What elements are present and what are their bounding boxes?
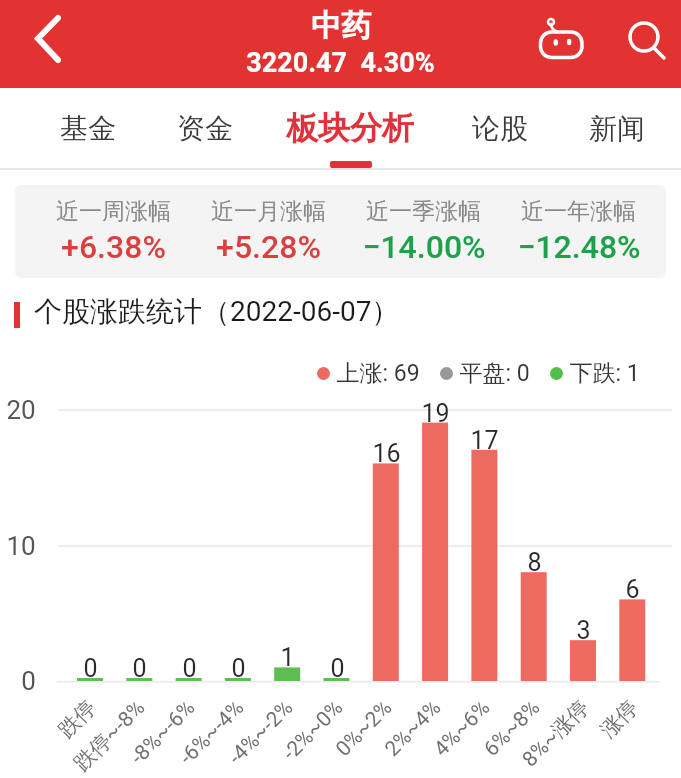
staticText: -2%~0% (277, 695, 348, 766)
button[interactable]: 板块分析 (270, 88, 430, 168)
button[interactable]: 新闻 (537, 88, 681, 168)
staticText: 0 (330, 654, 345, 683)
staticText: 0 (83, 654, 98, 683)
staticText: 资金 (177, 111, 233, 146)
staticText: 3 (576, 616, 591, 645)
staticText: 8 (527, 548, 542, 577)
button[interactable] (532, 14, 592, 70)
staticText: 20 (6, 395, 36, 425)
staticText: 16 (372, 439, 401, 468)
staticText: 上涨: 69 (336, 359, 420, 388)
staticText: 近一季涨幅 (366, 197, 481, 226)
staticText: 4%~6% (429, 695, 495, 762)
button[interactable] (20, 8, 76, 72)
staticText: 平盘: 0 (459, 359, 530, 388)
staticText: 新闻 (589, 111, 645, 146)
staticText: +6.38% (61, 228, 166, 266)
staticText: 8%~涨停 (516, 695, 594, 773)
staticText: 0 (231, 654, 246, 683)
staticText: 0 (182, 654, 197, 683)
staticText: 0 (21, 666, 36, 696)
staticText: 近一月涨幅 (211, 197, 326, 226)
staticText: 10 (6, 531, 36, 561)
staticText: 近一周涨幅 (56, 197, 171, 226)
staticText: 中药 (311, 7, 371, 45)
staticText: 下跌: 1 (569, 359, 640, 388)
staticText: -8%~-6% (125, 695, 200, 770)
staticText: 1 (280, 643, 295, 672)
staticText: -6%~-4% (174, 695, 249, 770)
staticText: 跌停 (53, 695, 101, 743)
staticText: −12.48% (517, 228, 641, 266)
staticText: −14.00% (362, 228, 486, 266)
button[interactable] (620, 12, 672, 68)
staticText: 0%~2% (331, 695, 397, 762)
button[interactable]: 论股 (420, 88, 580, 168)
staticText: 6%~8% (479, 695, 545, 762)
staticText: 跌停~-8% (68, 695, 150, 777)
staticText: 19 (421, 399, 450, 428)
staticText: +5.28% (216, 228, 321, 266)
staticText: 基金 (60, 111, 116, 146)
staticText: 近一年涨幅 (521, 197, 636, 226)
button[interactable]: 基金 (8, 88, 168, 168)
staticText: -4%~-2% (223, 695, 298, 770)
staticText: 17 (470, 426, 499, 455)
staticText: 个股涨跌统计（2022-06-07） (34, 294, 400, 329)
staticText: 3220.47 4.30% (246, 47, 435, 79)
staticText: 涨停 (595, 695, 643, 743)
button[interactable]: 资金 (125, 88, 285, 168)
staticText: 6 (625, 575, 640, 604)
staticText: 2%~4% (380, 695, 446, 762)
staticText: 0 (132, 654, 147, 683)
staticText: 论股 (472, 111, 528, 146)
staticText: 板块分析 (286, 108, 414, 148)
